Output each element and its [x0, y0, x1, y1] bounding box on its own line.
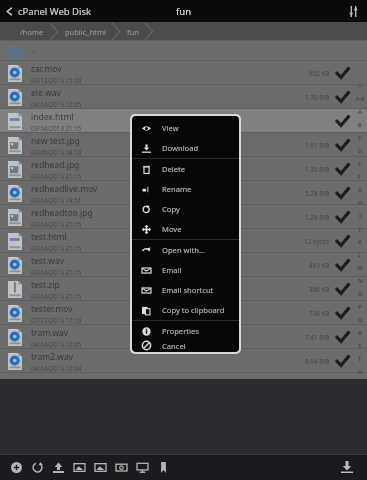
button[interactable]: Gallery	[69, 457, 90, 478]
staticText: public_html	[65, 27, 106, 37]
button[interactable]: index.html	[0, 109, 367, 133]
button[interactable]: Move	[132, 219, 239, 239]
button[interactable]: fun	[121, 25, 145, 39]
button[interactable]: M	[353, 261, 367, 274]
staticText: test.wav	[31, 255, 65, 267]
button[interactable]: cPanel Web Disk	[0, 5, 98, 18]
staticText: 8.94 MB	[305, 357, 330, 366]
button[interactable]: tram2.wav	[0, 349, 367, 373]
button[interactable]: View	[132, 118, 239, 138]
button[interactable]: test.wav	[0, 253, 367, 277]
button[interactable]: K	[353, 235, 367, 248]
button[interactable]: Upload	[48, 457, 69, 478]
button[interactable]: A	[353, 105, 367, 118]
staticText: C	[358, 134, 362, 142]
button[interactable]: G	[353, 183, 367, 196]
button[interactable]: redhead.jpg	[0, 157, 367, 181]
button[interactable]: Q	[353, 313, 367, 326]
button[interactable]: S	[353, 339, 367, 352]
staticText: P	[358, 303, 362, 311]
staticText: 03/04/2013 21:15	[31, 172, 82, 180]
button[interactable]: Refresh	[27, 457, 48, 478]
button[interactable]: Download	[132, 138, 239, 158]
button[interactable]: P	[353, 300, 367, 313]
button[interactable]: Delete	[132, 159, 239, 179]
staticText: Delete	[162, 164, 186, 174]
button[interactable]: test.zip	[0, 277, 367, 301]
button[interactable]: R	[353, 326, 367, 339]
staticText: S	[358, 342, 362, 350]
staticText: R	[358, 329, 362, 337]
staticText: ..	[31, 46, 35, 56]
staticText: 0-9	[356, 95, 365, 103]
staticText: 734 KB	[309, 309, 330, 318]
button[interactable]: ele.wav	[0, 85, 367, 109]
staticText: Rename	[162, 184, 192, 194]
button[interactable]: tram.wav	[0, 325, 367, 349]
staticText: Copy to clipboard	[162, 305, 225, 315]
staticText: H	[358, 199, 363, 207]
staticText: O	[358, 290, 363, 298]
button[interactable]: •	[353, 79, 367, 92]
button[interactable]: Rename	[132, 179, 239, 199]
button[interactable]: T	[353, 352, 367, 365]
button[interactable]: redheadtoo.jpg	[0, 205, 367, 229]
button[interactable]: public_html	[59, 25, 112, 39]
staticText: tram.wav	[31, 327, 69, 339]
button[interactable]: Copy to clipboard	[132, 300, 239, 320]
button[interactable]: test.html	[0, 229, 367, 253]
staticText: test.html	[31, 231, 67, 243]
staticText: 1.70 MB	[305, 93, 330, 102]
button[interactable]: redheadlive.mov	[0, 181, 367, 205]
staticText: G	[358, 186, 363, 194]
button[interactable]: C	[353, 131, 367, 144]
button[interactable]: Screen	[132, 457, 153, 478]
staticText: B	[358, 121, 362, 129]
button[interactable]: Add	[6, 457, 27, 478]
button[interactable]: U	[353, 365, 367, 378]
staticText: A	[358, 108, 362, 116]
button[interactable]: Properties	[132, 321, 239, 341]
button[interactable]: car.mov	[0, 61, 367, 85]
button[interactable]: Download all	[337, 457, 357, 477]
button[interactable]: O	[353, 287, 367, 300]
button[interactable]: H	[353, 196, 367, 209]
button[interactable]: D	[353, 144, 367, 157]
button[interactable]: ..	[0, 41, 367, 61]
button[interactable]: L	[353, 248, 367, 261]
staticText: tester.mov	[31, 303, 73, 315]
staticText: L	[358, 251, 362, 259]
button[interactable]: F	[353, 170, 367, 183]
button[interactable]: 0-9	[353, 92, 367, 105]
staticText: fun	[127, 27, 139, 37]
staticText: Cancel	[162, 341, 186, 350]
staticText: 1.35 MB	[305, 165, 330, 174]
button[interactable]: tester.mov	[0, 301, 367, 325]
button[interactable]: I	[353, 209, 367, 222]
button[interactable]: Image	[90, 457, 111, 478]
button[interactable]: Cancel	[132, 341, 239, 350]
staticText: Move	[162, 224, 182, 234]
staticText: index.html	[31, 111, 74, 123]
button[interactable]: Email shortcut	[132, 280, 239, 300]
button[interactable]: Bookmark	[153, 457, 174, 478]
button[interactable]: Camera	[111, 457, 132, 478]
button[interactable]: B	[353, 118, 367, 131]
button[interactable]: Email	[132, 260, 239, 280]
staticText: Open with...	[162, 245, 206, 255]
button[interactable]: J	[353, 222, 367, 235]
button[interactable]: new test.jpg	[0, 133, 367, 157]
staticText: /home	[20, 27, 44, 37]
button[interactable]: Open with...	[132, 240, 239, 260]
button[interactable]: Copy	[132, 199, 239, 219]
staticText: 386 KB	[309, 285, 330, 294]
button[interactable]: Sort	[345, 3, 361, 19]
button[interactable]: N	[353, 274, 367, 287]
button[interactable]: E	[353, 157, 367, 170]
staticText: 04/04/2013 10:04	[31, 364, 82, 372]
staticText: 03/04/2013 21:15	[31, 292, 82, 300]
staticText: 03/04/2013 21:15	[31, 244, 82, 252]
button[interactable]: /home	[14, 25, 50, 39]
